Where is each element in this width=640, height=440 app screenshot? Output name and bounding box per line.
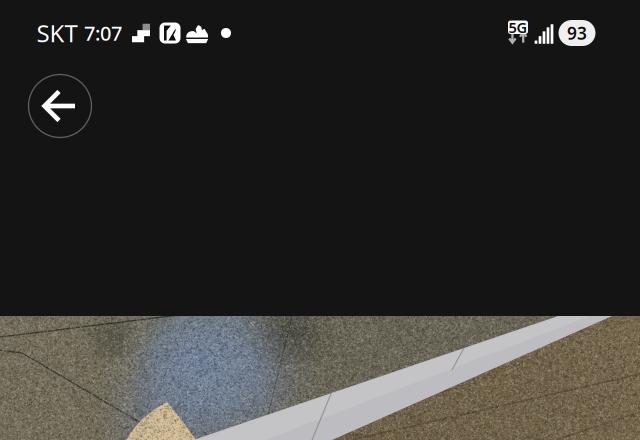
staticText: 7:07 xyxy=(84,20,122,46)
staticText: 5G xyxy=(508,17,527,37)
staticText: 93 xyxy=(567,21,587,44)
staticText: SKT xyxy=(36,17,77,49)
button[interactable]: Back xyxy=(28,74,91,137)
